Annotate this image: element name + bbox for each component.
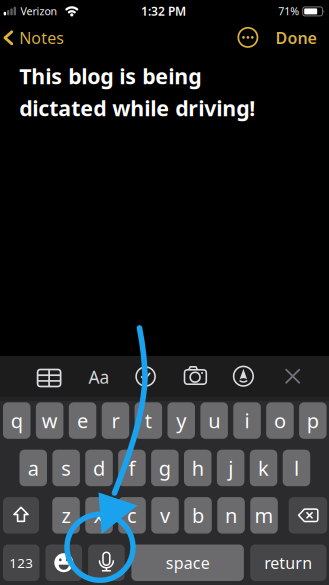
button[interactable]: j [217,450,244,486]
staticText: d [93,455,105,481]
button[interactable]: w [36,402,63,439]
staticText: h [192,455,204,481]
staticText: z [61,502,70,529]
staticText: 123 [9,554,33,572]
button[interactable]: p [299,402,327,439]
staticText: Notes [19,27,64,48]
staticText: Verizon [20,4,57,18]
button[interactable]: d [85,450,113,486]
button[interactable]: More options [237,27,258,48]
button[interactable]: r [102,402,129,439]
button[interactable]: f [118,450,146,486]
button[interactable]: Delete [289,497,327,534]
button[interactable]: Shift [3,497,39,534]
button[interactable]: m [250,497,278,534]
button[interactable]: u [200,402,228,439]
button[interactable]: 123 [3,544,39,581]
button[interactable]: l [283,450,310,486]
button[interactable]: n [217,497,245,534]
staticText: y [176,407,186,434]
staticText: space [166,552,210,573]
button[interactable]: e [69,402,96,439]
button[interactable]: Done [275,27,316,48]
staticText: r [111,407,119,434]
button[interactable]: q [3,402,30,439]
button[interactable]: Emoji [45,544,82,581]
button[interactable]: Dictate [88,544,125,581]
staticText: Done [275,27,316,48]
button[interactable]: o [266,402,294,439]
button[interactable]: c [118,497,146,534]
button[interactable]: v [151,497,179,534]
button[interactable]: h [184,450,211,486]
staticText: This blog is being [19,62,201,90]
staticText: b [192,502,204,529]
button[interactable]: i [233,402,261,439]
staticText: u [208,407,220,434]
button[interactable]: Camera [184,366,207,388]
button[interactable]: Insert table [37,366,62,390]
staticText: dictated while driving! [19,94,255,122]
button[interactable]: a [19,450,47,486]
button[interactable]: Markup [233,366,254,387]
button[interactable]: Dismiss keyboard [285,368,301,384]
button[interactable]: g [151,450,179,486]
staticText: return [264,552,312,573]
staticText: g [159,455,171,481]
staticText: n [225,502,237,529]
button[interactable]: Back to Notes [4,27,64,48]
button[interactable]: k [250,450,277,486]
staticText: 1:32 PM [141,3,186,19]
staticText: Aa [88,365,109,388]
staticText: o [274,407,286,434]
staticText: j [228,455,233,481]
button[interactable]: t [135,402,162,439]
staticText: x [93,502,104,529]
button[interactable]: x [85,497,113,534]
staticText: c [127,502,137,529]
staticText: e [77,407,88,434]
staticText: q [11,407,23,434]
button[interactable]: y [167,402,195,439]
staticText: s [61,455,71,481]
button[interactable]: s [52,450,80,486]
button[interactable]: z [52,497,80,534]
staticText: m [255,502,274,529]
staticText: w [42,407,58,434]
button[interactable]: b [184,497,212,534]
staticText: f [128,455,135,481]
staticText: p [307,407,319,434]
staticText: l [294,455,299,481]
staticText: 71% [278,4,299,18]
button[interactable]: return [250,544,326,581]
staticText: k [258,455,269,481]
button[interactable]: Format [88,365,109,388]
staticText: i [244,407,249,434]
button[interactable]: space [131,544,244,581]
staticText: t [145,407,152,434]
staticText: v [160,502,170,529]
button[interactable]: Checklist [135,366,156,387]
staticText: a [28,455,39,481]
